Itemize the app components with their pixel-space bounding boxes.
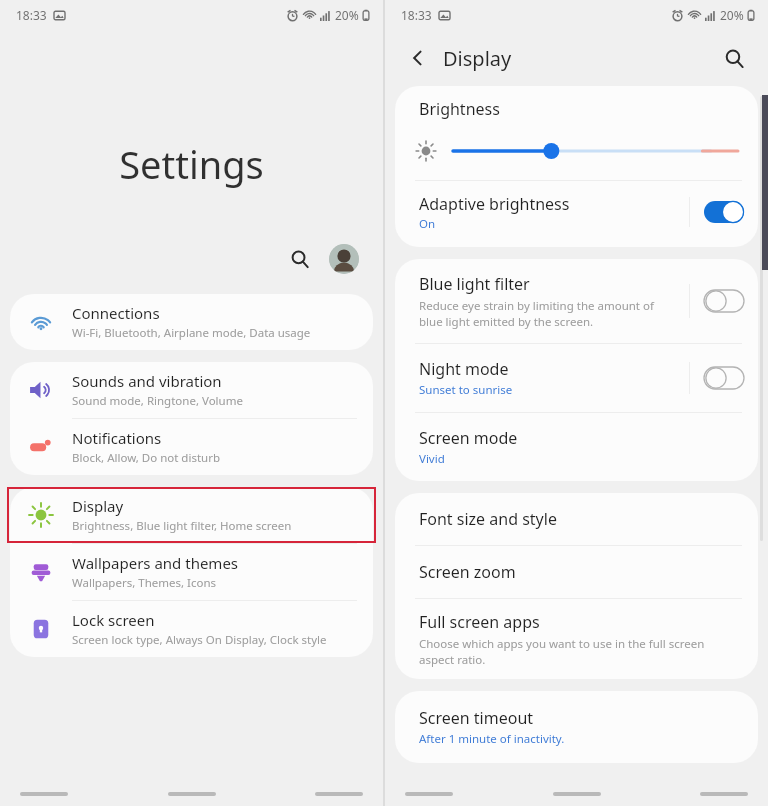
staticText: Block, Allow, Do not disturb bbox=[72, 450, 220, 466]
button[interactable]: Lock screen bbox=[10, 601, 373, 657]
staticText: Vivid bbox=[419, 451, 445, 467]
staticText: Lock screen bbox=[72, 610, 155, 630]
staticText: Choose which apps you want to use in the… bbox=[419, 636, 705, 667]
staticText: Settings bbox=[0, 138, 383, 190]
staticText: Night mode bbox=[419, 358, 509, 380]
staticText: On bbox=[419, 216, 436, 232]
button[interactable] bbox=[415, 134, 738, 168]
button[interactable]: Night mode bbox=[395, 344, 758, 412]
button[interactable]: Account bbox=[329, 244, 359, 274]
button[interactable] bbox=[704, 201, 744, 223]
staticText: Full screen apps bbox=[419, 611, 540, 633]
button[interactable]: Display bbox=[10, 487, 373, 543]
staticText: Brightness, Blue light filter, Home scre… bbox=[72, 518, 292, 534]
staticText: Screen timeout bbox=[419, 707, 534, 729]
button[interactable]: Connections bbox=[10, 294, 373, 350]
staticText: Adaptive brightness bbox=[419, 193, 570, 215]
staticText: Screen zoom bbox=[419, 561, 516, 583]
staticText: 18:33 bbox=[16, 7, 47, 23]
button[interactable]: Screen zoom bbox=[395, 546, 758, 598]
staticText: Wi-Fi, Bluetooth, Airplane mode, Data us… bbox=[72, 325, 311, 341]
staticText: Display bbox=[72, 496, 124, 516]
staticText: Connections bbox=[72, 303, 160, 323]
button[interactable] bbox=[704, 367, 744, 389]
button[interactable]: Font size and style bbox=[395, 493, 758, 545]
staticText: Sounds and vibration bbox=[72, 371, 222, 391]
staticText: Brightness bbox=[419, 98, 500, 120]
button[interactable]: Adaptive brightness bbox=[395, 181, 758, 243]
button[interactable]: Search settings bbox=[283, 242, 317, 276]
staticText: Wallpapers, Themes, Icons bbox=[72, 575, 217, 591]
button[interactable] bbox=[704, 290, 744, 312]
button[interactable]: Search bbox=[718, 42, 750, 74]
staticText: Font size and style bbox=[419, 508, 557, 530]
button[interactable]: Screen mode bbox=[395, 413, 758, 481]
button[interactable]: Sounds and vibration bbox=[10, 362, 373, 418]
button[interactable]: Screen timeout bbox=[395, 691, 758, 763]
staticText: Notifications bbox=[72, 428, 162, 448]
button[interactable]: Notifications bbox=[10, 419, 373, 475]
staticText: Screen mode bbox=[419, 427, 518, 449]
staticText: 20% bbox=[720, 7, 744, 23]
staticText: Blue light filter bbox=[419, 273, 530, 295]
staticText: Reduce eye strain by limiting the amount… bbox=[419, 298, 654, 329]
staticText: After 1 minute of inactivity. bbox=[419, 731, 565, 747]
button[interactable]: Wallpapers and themes bbox=[10, 544, 373, 600]
staticText: Display bbox=[443, 45, 512, 72]
button[interactable]: Blue light filter bbox=[395, 259, 758, 343]
staticText: 20% bbox=[335, 7, 359, 23]
staticText: Screen lock type, Always On Display, Clo… bbox=[72, 632, 327, 648]
staticText: 18:33 bbox=[401, 7, 432, 23]
staticText: Wallpapers and themes bbox=[72, 553, 239, 573]
staticText: Sound mode, Ringtone, Volume bbox=[72, 393, 243, 409]
button[interactable]: Back bbox=[403, 43, 433, 73]
button[interactable]: Full screen apps bbox=[395, 599, 758, 679]
staticText: Sunset to sunrise bbox=[419, 382, 513, 398]
